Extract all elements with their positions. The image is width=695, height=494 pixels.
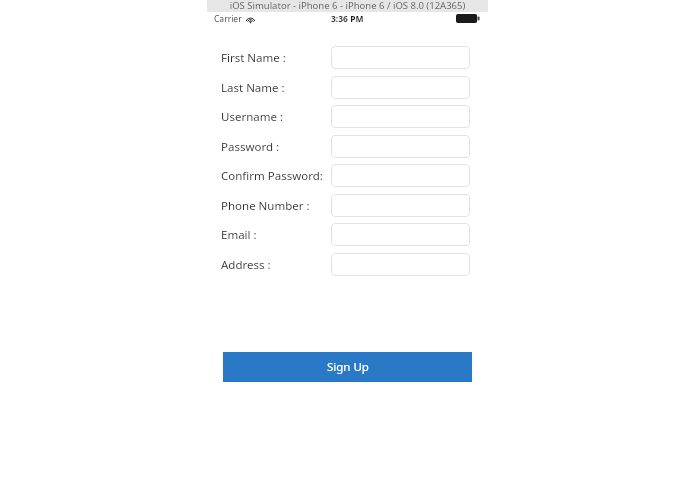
button[interactable]: Email : <box>331 223 470 246</box>
staticText: iOS Simulator - iPhone 6 - iPhone 6 / iO… <box>207 0 488 12</box>
button[interactable]: First Name : <box>331 46 470 69</box>
staticText: Address : <box>221 257 271 273</box>
button[interactable]: Sign Up <box>223 352 472 382</box>
staticText: Phone Number : <box>221 198 310 214</box>
staticText: Confirm Password: <box>221 168 323 184</box>
staticText: Username : <box>221 109 284 125</box>
staticText: Carrier <box>214 13 242 25</box>
button[interactable]: Address : <box>331 253 470 276</box>
button[interactable]: Username : <box>331 105 470 128</box>
staticText: Last Name : <box>221 80 285 96</box>
staticText: Password : <box>221 139 280 155</box>
button[interactable]: Last Name : <box>331 76 470 99</box>
button[interactable]: Password : <box>331 135 470 158</box>
button[interactable]: Confirm Password: <box>331 164 470 187</box>
staticText: 3:36 PM <box>331 13 364 25</box>
staticText: First Name : <box>221 50 286 66</box>
staticText: Sign Up <box>327 359 369 375</box>
button[interactable]: Phone Number : <box>331 194 470 217</box>
staticText: Email : <box>221 227 257 243</box>
